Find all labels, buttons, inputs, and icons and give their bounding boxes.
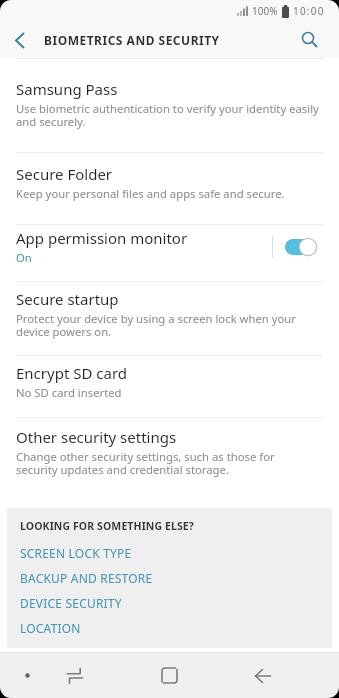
button[interactable] — [0, 22, 40, 58]
button[interactable]: Secure Folder — [0, 153, 339, 224]
button[interactable]: LOCATION — [20, 620, 81, 636]
button[interactable] — [243, 653, 283, 698]
button[interactable] — [285, 238, 317, 256]
staticText: On — [16, 250, 32, 265]
button[interactable]: Other security settings — [0, 418, 339, 478]
staticText: Other security settings — [16, 427, 177, 447]
button[interactable] — [289, 22, 331, 58]
button[interactable]: Samsung Pass — [0, 59, 339, 152]
button[interactable] — [149, 653, 189, 698]
button[interactable]: Secure startup — [0, 282, 339, 355]
staticText: Encrypt SD card — [16, 363, 128, 383]
button[interactable]: BACKUP AND RESTORE — [20, 570, 153, 586]
staticText: BIOMETRICS AND SECURITY — [44, 32, 220, 48]
staticText: Secure Folder — [16, 164, 113, 184]
staticText: 100% — [252, 4, 278, 18]
staticText: Protect your device by using a screen lo… — [16, 311, 296, 340]
staticText: Secure startup — [16, 289, 119, 309]
staticText: 10:00 — [293, 4, 325, 18]
staticText: Samsung Pass — [16, 79, 118, 99]
button[interactable] — [55, 653, 95, 698]
staticText: Keep your personal files and apps safe a… — [16, 186, 285, 201]
staticText: Use biometric authentication to verify y… — [16, 101, 319, 130]
staticText: App permission monitor — [16, 228, 188, 248]
staticText: LOOKING FOR SOMETHING ELSE? — [20, 519, 194, 533]
button[interactable]: SCREEN LOCK TYPE — [20, 545, 132, 561]
staticText: No SD card inserted — [16, 385, 122, 400]
button[interactable]: Encrypt SD card — [0, 356, 339, 417]
button[interactable]: App permission monitor — [0, 225, 339, 281]
button[interactable]: DEVICE SECURITY — [20, 595, 122, 611]
staticText: Change other security settings, such as … — [16, 449, 275, 478]
